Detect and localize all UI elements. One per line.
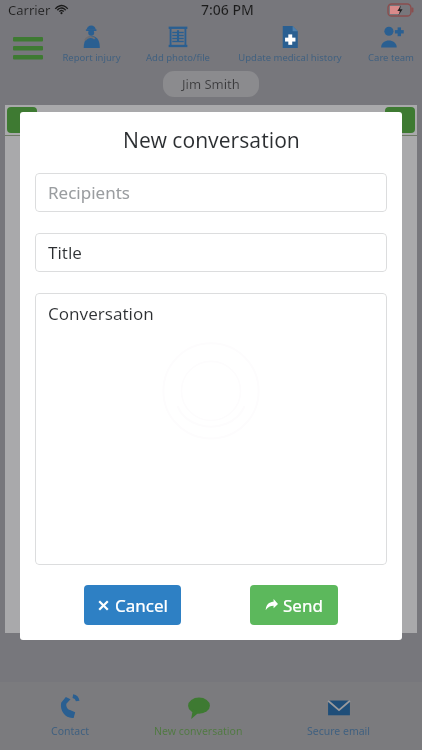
staticText: Conversation	[48, 302, 154, 325]
button[interactable]: Title	[35, 233, 387, 272]
button[interactable]: Conversation	[35, 293, 387, 565]
staticText: 7:06 PM	[201, 0, 254, 19]
staticText: New conversation	[154, 724, 243, 738]
staticText: Send	[283, 594, 323, 617]
staticText: Secure email	[307, 724, 371, 738]
staticText: New conversation	[123, 126, 300, 155]
button[interactable]: Contact	[37, 689, 103, 744]
staticText: Jim Smith	[182, 75, 240, 93]
staticText: Report injury	[62, 51, 121, 64]
button[interactable]: Send	[250, 585, 338, 625]
staticText: Carrier	[8, 1, 51, 19]
staticText: Care team	[368, 51, 414, 64]
staticText: Add photo/file	[146, 51, 210, 64]
button[interactable]: Menu	[8, 28, 48, 68]
button[interactable]: Report injury	[39, 24, 143, 72]
staticText: Recipients	[48, 181, 130, 204]
button[interactable]: Recipients	[35, 173, 387, 212]
button[interactable]: Update medical history	[238, 24, 342, 72]
staticText: Update medical history	[238, 51, 342, 64]
staticText: Contact	[51, 724, 89, 738]
button[interactable]: New conversation	[140, 689, 257, 744]
button[interactable]: Secure email	[293, 689, 385, 744]
button[interactable]: New	[7, 107, 37, 133]
button[interactable]: Jim Smith	[163, 71, 259, 97]
staticText: Title	[48, 241, 82, 264]
button[interactable]: Add	[385, 107, 415, 133]
button[interactable]: Care team	[339, 24, 422, 72]
staticText: Cancel	[115, 594, 168, 617]
button[interactable]: Cancel	[84, 585, 181, 625]
button[interactable]: Add photo/file	[126, 24, 230, 72]
